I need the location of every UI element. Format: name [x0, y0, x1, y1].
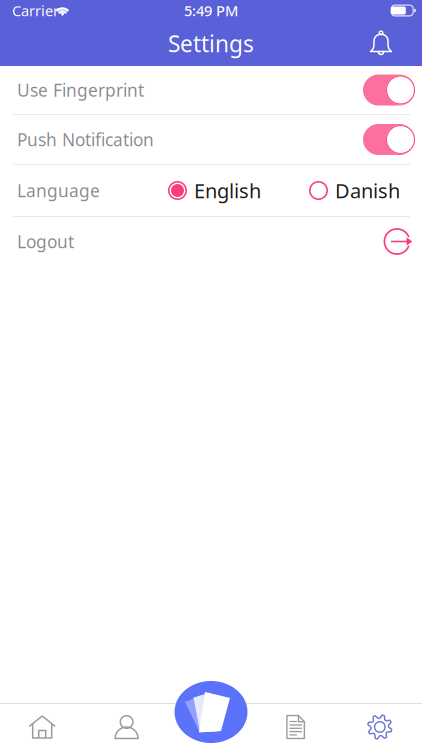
staticText: Push Notification [17, 128, 154, 151]
staticText: Logout [17, 230, 74, 253]
button[interactable]: Push Notification [0, 115, 422, 164]
button[interactable]: Logout [0, 217, 422, 266]
button[interactable]: Profile [84, 704, 169, 750]
staticText: Danish [335, 177, 400, 204]
button[interactable]: Notifications [361, 22, 401, 64]
button[interactable]: Use Fingerprint [0, 66, 422, 114]
staticText: Use Fingerprint [17, 78, 144, 101]
staticText: 5:49 PM [184, 1, 238, 20]
button[interactable]: Danish [309, 173, 400, 207]
button[interactable]: Documents [253, 704, 338, 750]
staticText: English [194, 177, 261, 204]
button[interactable]: Add card [174, 681, 247, 743]
button[interactable]: English [168, 173, 261, 207]
staticText: Carrier [12, 1, 59, 20]
staticText: Language [17, 179, 100, 202]
button[interactable]: Home [0, 704, 84, 750]
staticText: Settings [168, 28, 254, 58]
button[interactable]: Settings [338, 704, 422, 750]
